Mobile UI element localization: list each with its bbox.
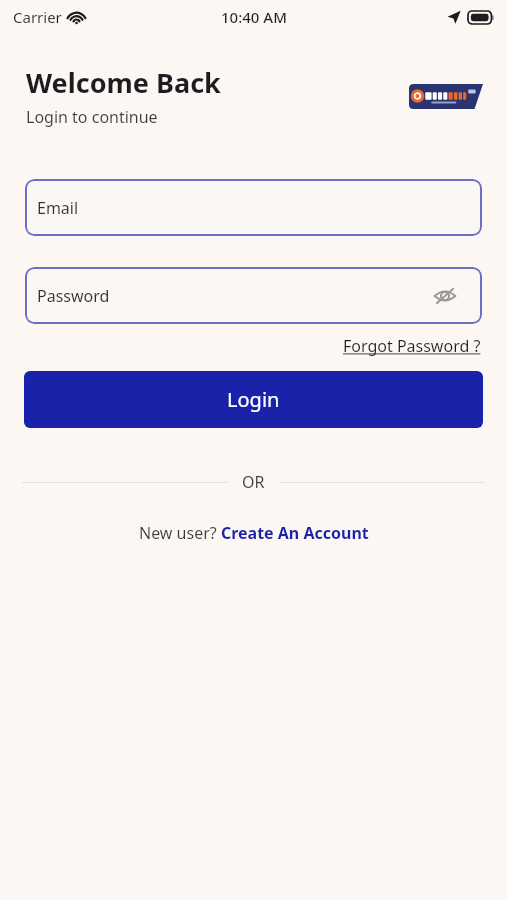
staticText: 10:40 AM — [221, 7, 287, 27]
button[interactable]: Email — [25, 179, 482, 236]
button[interactable]: Login — [24, 371, 483, 428]
button[interactable]: Forgot Password ? — [341, 332, 483, 360]
staticText: Login — [227, 386, 280, 413]
other: Megadeal logo — [409, 84, 483, 109]
staticText: Welcome Back — [26, 64, 221, 101]
staticText: Email — [37, 197, 79, 219]
staticText: OR — [242, 471, 265, 493]
button[interactable]: Toggle password visibility — [428, 279, 462, 313]
staticText: Forgot Password ? — [343, 335, 481, 357]
staticText: Carrier — [13, 7, 62, 27]
staticText: Login to continue — [26, 106, 158, 128]
staticText: New user? Create An Account — [139, 522, 369, 544]
staticText: Password — [37, 285, 110, 307]
button[interactable]: Password — [25, 267, 482, 324]
button[interactable]: New user? Create An Account — [139, 522, 369, 544]
